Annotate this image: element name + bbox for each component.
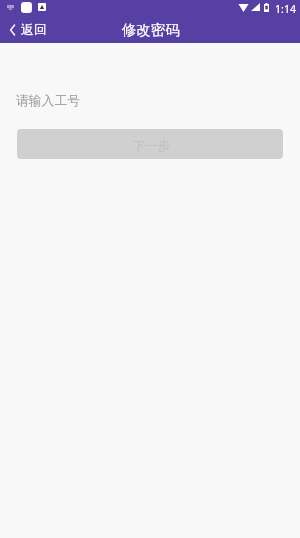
button[interactable]: 返回 — [0, 15, 55, 43]
staticText: 下一步 — [133, 138, 170, 153]
staticText: 返回 — [21, 22, 47, 38]
staticText: 请输入工号 — [16, 93, 80, 109]
staticText: 1:14 — [275, 2, 297, 16]
staticText: 修改密码 — [122, 21, 180, 43]
